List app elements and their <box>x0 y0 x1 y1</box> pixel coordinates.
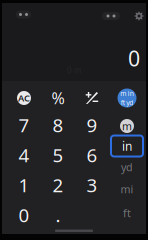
button[interactable]: 6 <box>75 140 109 170</box>
staticText: 7 <box>18 113 29 137</box>
staticText: 0 <box>128 44 140 72</box>
button[interactable]: Toggle sign <box>75 84 109 112</box>
button[interactable]: AC <box>7 84 41 112</box>
button[interactable]: 2 <box>41 170 75 200</box>
button[interactable]: 0 <box>7 200 41 230</box>
staticText: ft <box>123 206 131 220</box>
button[interactable]: yd <box>108 158 146 176</box>
staticText: . <box>55 203 60 227</box>
button[interactable]: 5 <box>41 140 75 170</box>
button[interactable]: ft <box>108 204 146 222</box>
button[interactable]: 7 <box>7 110 41 140</box>
staticText: yd <box>121 160 133 174</box>
staticText: 1 <box>18 173 29 197</box>
staticText: % <box>51 87 64 109</box>
button[interactable]: in <box>108 135 146 157</box>
staticText: 9 <box>86 113 97 137</box>
staticText: 0 <box>18 203 29 227</box>
staticText: 8 <box>52 113 63 137</box>
staticText: ft <box>121 98 125 107</box>
staticText: m <box>122 119 132 133</box>
button[interactable]: . <box>41 200 75 230</box>
button[interactable]: mi <box>108 180 146 198</box>
staticText: yd <box>126 98 133 107</box>
button[interactable]: m <box>108 116 146 136</box>
button[interactable]: 3 <box>75 170 109 200</box>
button[interactable]: Scientific keypad <box>16 11 31 18</box>
staticText: m <box>120 89 126 98</box>
staticText: 6 <box>86 143 97 167</box>
button[interactable]: % <box>41 84 75 112</box>
button[interactable]: Settings <box>134 11 144 21</box>
staticText: 3 <box>86 173 97 197</box>
staticText: 4 <box>18 143 29 167</box>
staticText: in <box>128 89 134 98</box>
staticText: 5 <box>52 143 63 167</box>
staticText: AC <box>18 92 30 104</box>
button[interactable]: 9 <box>75 110 109 140</box>
staticText: in <box>122 138 132 154</box>
button[interactable]: History <box>102 12 120 19</box>
staticText: mi <box>120 182 133 196</box>
staticText: 2 <box>52 173 63 197</box>
button[interactable]: Unit converter <box>108 87 146 109</box>
button[interactable]: 1 <box>7 170 41 200</box>
button[interactable]: 8 <box>41 110 75 140</box>
button[interactable]: 4 <box>7 140 41 170</box>
